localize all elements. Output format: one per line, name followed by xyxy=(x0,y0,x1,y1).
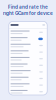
button[interactable] xyxy=(9,36,47,42)
button[interactable] xyxy=(9,75,47,82)
button[interactable] xyxy=(9,82,47,88)
button[interactable] xyxy=(9,49,47,55)
button[interactable] xyxy=(9,62,47,69)
button[interactable] xyxy=(9,42,47,49)
button[interactable] xyxy=(9,88,47,95)
button[interactable] xyxy=(9,55,47,62)
staticText: Find and rate the xyxy=(8,4,48,10)
staticText: right GCam for device xyxy=(3,10,53,16)
button[interactable] xyxy=(9,29,47,36)
button[interactable] xyxy=(9,69,47,75)
